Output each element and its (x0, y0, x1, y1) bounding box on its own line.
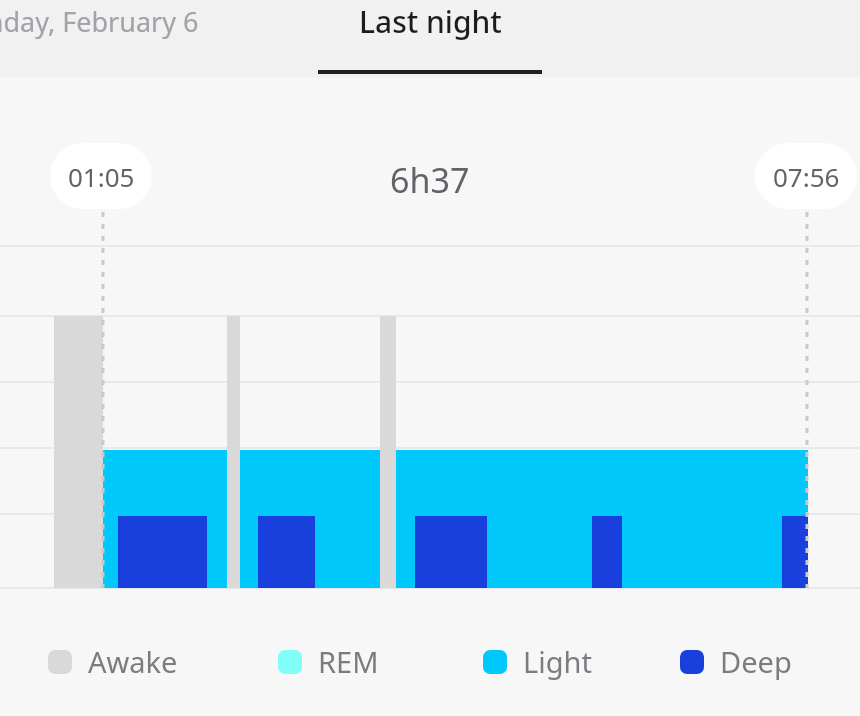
button[interactable]: Monday, February 6 (0, 0, 212, 78)
button[interactable]: 07:56 (755, 143, 857, 209)
staticText: 07:56 (773, 159, 840, 194)
staticText: 6h37 (390, 157, 470, 203)
staticText: Light (523, 642, 592, 681)
button[interactable]: Last night (318, 0, 542, 78)
button[interactable]: 01:05 (50, 143, 152, 209)
staticText: 01:05 (68, 159, 135, 194)
staticText: REM (318, 642, 379, 681)
staticText: Monday, February 6 (0, 3, 199, 40)
button[interactable]: Light (483, 642, 592, 681)
button[interactable]: Awake (48, 642, 178, 681)
staticText: Deep (720, 642, 792, 681)
staticText: Last night (359, 1, 502, 42)
button[interactable]: REM (278, 642, 379, 681)
staticText: Awake (88, 642, 178, 681)
button[interactable]: Deep (680, 642, 792, 681)
